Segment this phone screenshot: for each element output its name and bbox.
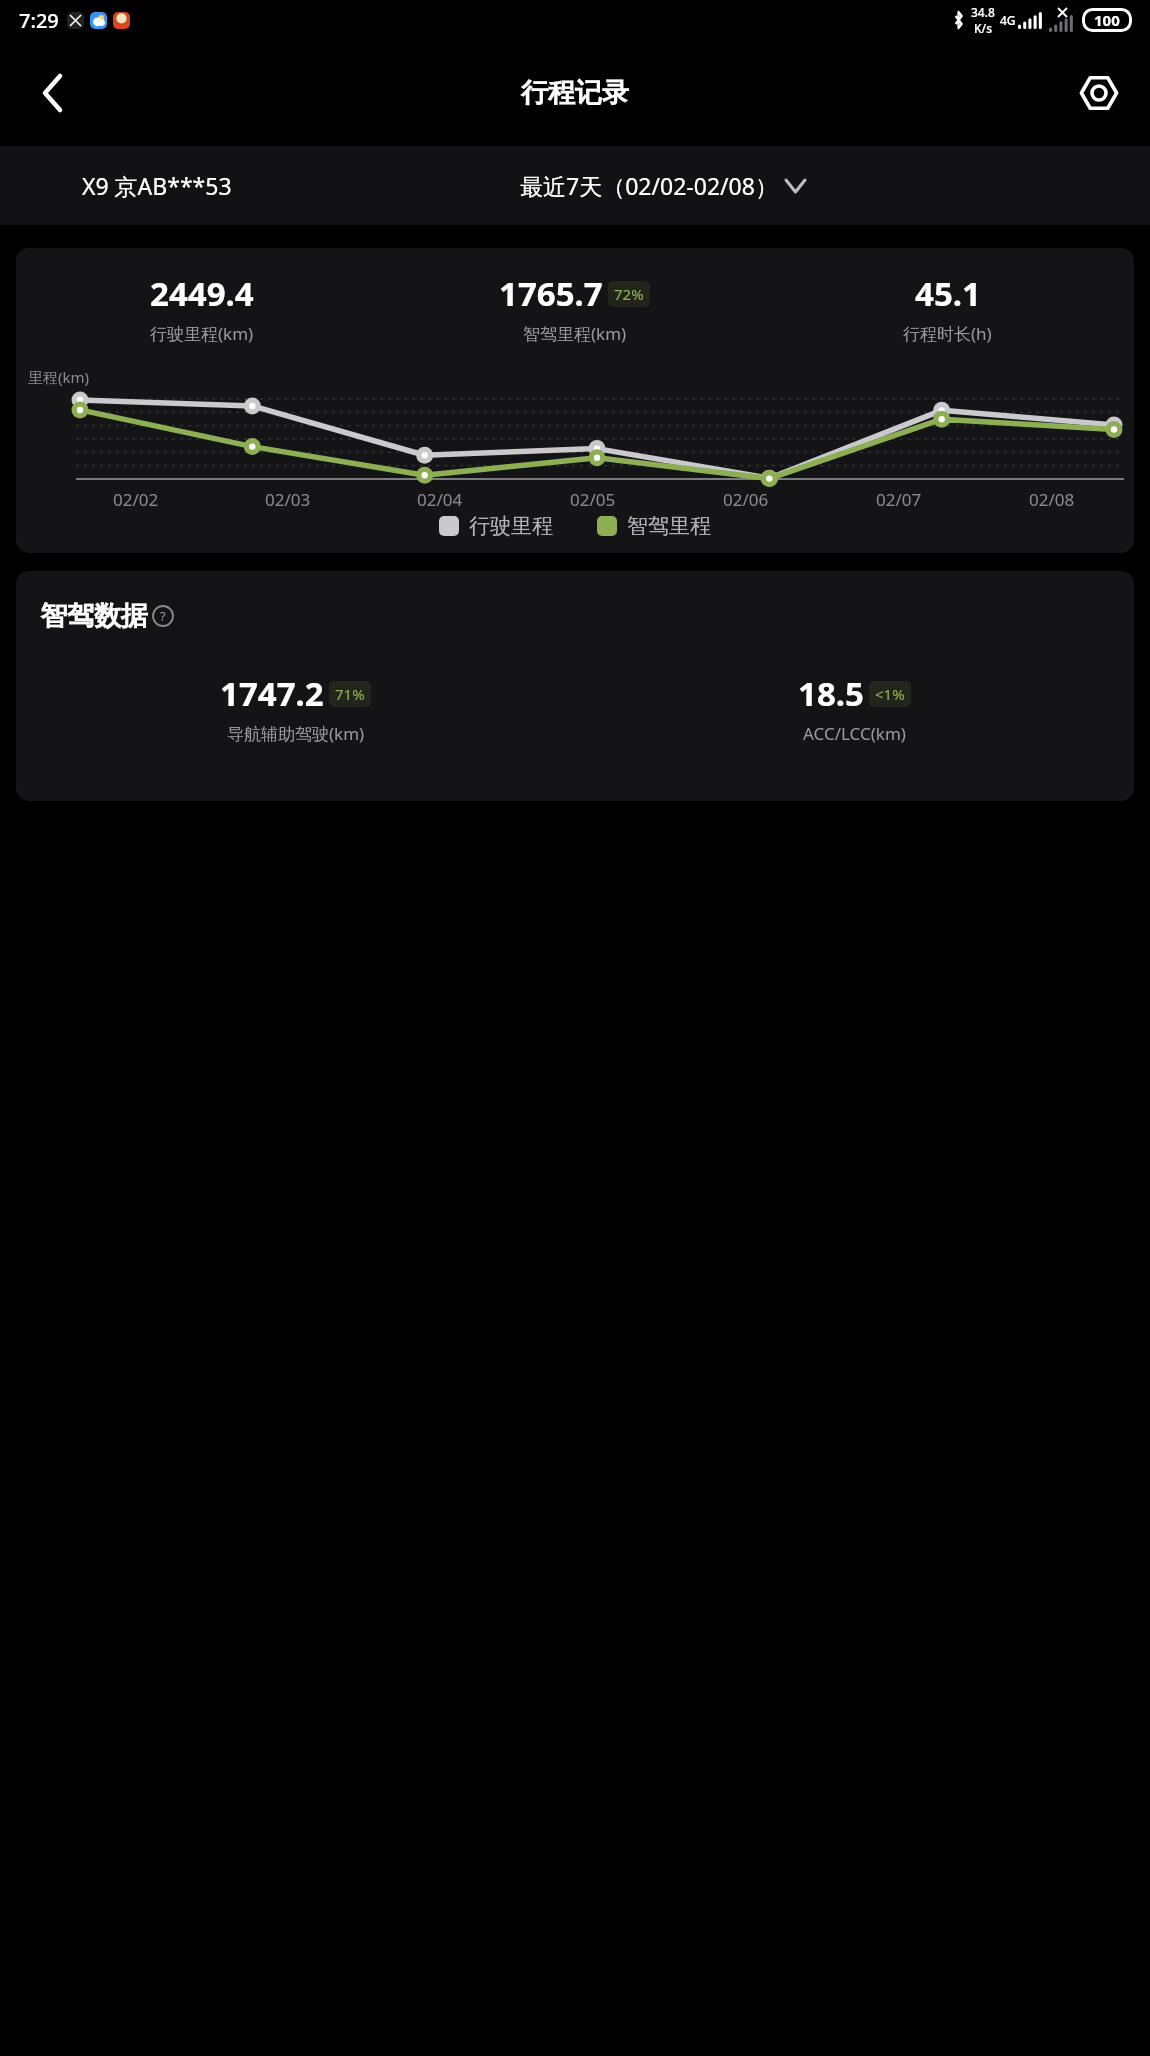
staticText: 02/07	[876, 488, 922, 511]
staticText: 45.1	[915, 271, 981, 316]
staticText: 02/02	[113, 488, 159, 511]
staticText: 1765.7	[499, 271, 603, 316]
button[interactable]: 智驾数据	[40, 599, 174, 633]
staticText: 02/05	[570, 488, 616, 511]
staticText: 500	[41, 407, 74, 408]
staticText: 智驾数据	[40, 599, 148, 633]
staticText: 行程时长(h)	[903, 322, 992, 345]
staticText: <1%	[875, 684, 905, 704]
staticText: 72%	[614, 284, 644, 304]
staticText: 4G	[1000, 12, 1016, 28]
button[interactable]: Back	[20, 60, 86, 126]
staticText: 里程(km)	[28, 367, 90, 387]
button[interactable]: 智驾里程	[597, 513, 711, 539]
button[interactable]: 最近7天（02/02-02/08）	[520, 170, 805, 201]
staticText: 行驶里程	[469, 513, 553, 539]
staticText: 100	[1094, 10, 1120, 30]
staticText: 行程记录	[521, 76, 629, 110]
staticText: 02/03	[265, 488, 311, 511]
staticText: ?	[160, 607, 166, 625]
staticText: 02/08	[1029, 488, 1075, 511]
staticText: 7:29	[19, 7, 59, 34]
staticText: 02/06	[723, 488, 769, 511]
staticText: 71%	[335, 684, 365, 704]
staticText: 34.8	[971, 4, 995, 20]
staticText: 导航辅助驾驶(km)	[227, 722, 365, 745]
staticText: 1747.2	[220, 671, 324, 716]
staticText: 最近7天（02/02-02/08）	[520, 170, 778, 201]
button[interactable]: 行驶里程	[439, 513, 553, 539]
staticText: K/s	[974, 20, 993, 36]
staticText: 智驾里程(km)	[523, 322, 627, 345]
staticText: ACC/LCC(km)	[803, 722, 906, 745]
staticText: 02/04	[417, 488, 463, 511]
staticText: 18.5	[798, 671, 864, 716]
button[interactable]: X9 京AB***53	[82, 170, 232, 201]
staticText: X9 京AB***53	[82, 170, 232, 201]
staticText: 2449.4	[150, 271, 254, 316]
other: Help	[152, 605, 174, 627]
staticText: 行驶里程(km)	[150, 322, 254, 345]
button[interactable]: Settings	[1068, 62, 1130, 124]
staticText: 智驾里程	[627, 513, 711, 539]
